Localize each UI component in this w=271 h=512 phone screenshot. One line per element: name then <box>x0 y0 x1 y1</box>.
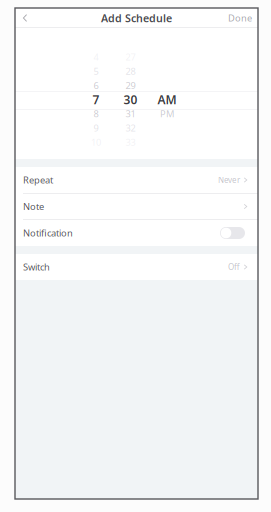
staticText: 4 <box>93 51 98 63</box>
button[interactable]: Notification <box>15 220 258 246</box>
button[interactable]: Repeat <box>15 167 258 193</box>
button[interactable]: Back <box>21 8 37 28</box>
staticText: Switch <box>23 261 50 273</box>
staticText: PM <box>160 107 174 120</box>
button[interactable]: Switch <box>15 254 258 280</box>
staticText: Never <box>218 175 240 185</box>
staticText: 7 <box>92 91 99 107</box>
staticText: 8 <box>93 107 98 120</box>
staticText: 28 <box>125 65 135 77</box>
staticText: Add Schedule <box>101 11 172 25</box>
staticText: Note <box>23 200 44 213</box>
staticText: 5 <box>93 65 98 77</box>
staticText: Repeat <box>23 174 53 186</box>
staticText: 31 <box>125 107 135 120</box>
staticText: AM <box>157 91 176 107</box>
button[interactable]: Note <box>15 193 258 219</box>
staticText: 29 <box>125 79 135 91</box>
staticText: 30 <box>123 91 137 107</box>
button[interactable]: Done <box>228 8 252 28</box>
staticText: Notification <box>23 227 73 239</box>
staticText: 27 <box>125 51 135 63</box>
staticText: Off <box>228 262 240 272</box>
staticText: 33 <box>125 136 135 148</box>
staticText: 9 <box>93 122 98 134</box>
staticText: 32 <box>125 122 135 134</box>
staticText: 6 <box>93 79 98 91</box>
staticText: Done <box>228 12 252 24</box>
staticText: 10 <box>91 136 101 148</box>
